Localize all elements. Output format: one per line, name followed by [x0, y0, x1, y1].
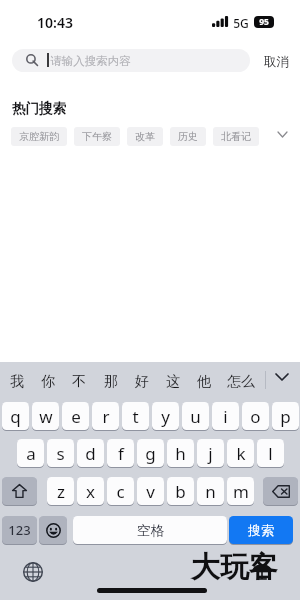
staticText: s: [56, 442, 65, 465]
staticText: f: [118, 442, 124, 465]
button[interactable]: d: [77, 439, 104, 467]
button[interactable]: n: [197, 477, 224, 505]
button[interactable]: Backspace: [263, 477, 298, 505]
staticText: 那: [104, 373, 118, 391]
button[interactable]: r: [92, 402, 119, 430]
button[interactable]: j: [197, 439, 224, 467]
staticText: z: [57, 480, 65, 503]
button[interactable]: 京腔新韵: [11, 127, 67, 146]
staticText: 下午察: [82, 130, 112, 143]
staticText: g: [145, 442, 156, 465]
staticText: 怎么: [227, 373, 255, 391]
button[interactable]: 123: [2, 516, 37, 544]
button[interactable]: q: [2, 402, 29, 430]
button[interactable]: 好: [126, 369, 157, 395]
button[interactable]: i: [212, 402, 239, 430]
button[interactable]: h: [167, 439, 194, 467]
staticText: 他: [197, 373, 211, 391]
button[interactable]: o: [242, 402, 269, 430]
staticText: w: [39, 405, 53, 428]
staticText: 10:43: [37, 13, 73, 32]
button[interactable]: 他: [188, 369, 219, 395]
staticText: 我: [10, 373, 24, 391]
button[interactable]: b: [167, 477, 194, 505]
staticText: 京腔新韵: [19, 130, 59, 143]
button[interactable]: 你: [32, 369, 63, 395]
button[interactable]: 不: [63, 369, 94, 395]
button[interactable]: k: [227, 439, 254, 467]
button[interactable]: m: [227, 477, 254, 505]
button[interactable]: v: [137, 477, 164, 505]
button[interactable]: l: [257, 439, 284, 467]
staticText: r: [102, 405, 110, 428]
staticText: 搜索: [248, 522, 274, 538]
staticText: 改革: [135, 130, 155, 143]
staticText: 95: [259, 16, 269, 28]
button[interactable]: Change keyboard: [22, 561, 44, 583]
button[interactable]: 下午察: [74, 127, 120, 146]
staticText: k: [236, 442, 246, 465]
button[interactable]: x: [77, 477, 104, 505]
staticText: 不: [72, 373, 86, 391]
button[interactable]: c: [107, 477, 134, 505]
staticText: y: [161, 405, 170, 428]
staticText: 历史: [178, 130, 198, 143]
staticText: i: [223, 405, 228, 428]
staticText: h: [175, 442, 186, 465]
button[interactable]: 改革: [127, 127, 163, 146]
button[interactable]: w: [32, 402, 59, 430]
button[interactable]: [12, 49, 250, 72]
button[interactable]: Shift: [2, 477, 37, 505]
staticText: t: [132, 405, 139, 428]
button[interactable]: g: [137, 439, 164, 467]
staticText: d: [85, 442, 96, 465]
staticText: p: [280, 405, 291, 428]
button[interactable]: p: [272, 402, 299, 430]
button[interactable]: e: [62, 402, 89, 430]
staticText: q: [10, 405, 21, 428]
button[interactable]: s: [47, 439, 74, 467]
button[interactable]: 这: [157, 369, 188, 395]
staticText: n: [205, 480, 216, 503]
button[interactable]: y: [152, 402, 179, 430]
staticText: b: [175, 480, 186, 503]
staticText: l: [268, 442, 273, 465]
staticText: j: [208, 442, 213, 465]
staticText: u: [190, 405, 201, 428]
staticText: 123: [8, 521, 31, 539]
staticText: 这: [166, 373, 180, 391]
button[interactable]: 空格: [73, 516, 227, 544]
button[interactable]: z: [47, 477, 74, 505]
button[interactable]: 我: [1, 369, 32, 395]
button[interactable]: 搜索: [229, 516, 293, 544]
staticText: 你: [41, 373, 55, 391]
staticText: m: [233, 480, 249, 503]
staticText: o: [250, 405, 261, 428]
button[interactable]: 那: [95, 369, 126, 395]
button[interactable]: Expand hot searches: [268, 125, 296, 144]
staticText: 大玩客: [191, 549, 278, 586]
button[interactable]: t: [122, 402, 149, 430]
button[interactable]: a: [17, 439, 44, 467]
staticText: a: [26, 442, 36, 465]
button[interactable]: 取消: [264, 54, 289, 70]
button[interactable]: 历史: [170, 127, 206, 146]
staticText: 热门搜索: [12, 100, 66, 117]
staticText: c: [116, 480, 125, 503]
button[interactable]: f: [107, 439, 134, 467]
staticText: e: [71, 405, 81, 428]
button[interactable]: More candidates: [268, 364, 296, 390]
staticText: 好: [135, 373, 149, 391]
staticText: x: [86, 480, 95, 503]
staticText: v: [146, 480, 155, 503]
staticText: 请输入搜索内容: [50, 54, 131, 68]
button[interactable]: Emoji: [39, 516, 67, 544]
staticText: 5G: [233, 15, 249, 31]
button[interactable]: 怎么: [219, 369, 263, 395]
button[interactable]: 北看记: [213, 127, 259, 146]
button[interactable]: u: [182, 402, 209, 430]
staticText: 空格: [137, 522, 164, 539]
staticText: 北看记: [221, 130, 251, 143]
staticText: 取消: [264, 54, 289, 70]
other: Search: [26, 54, 38, 66]
